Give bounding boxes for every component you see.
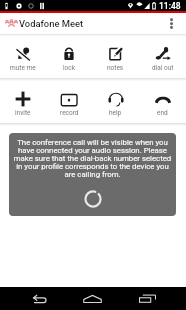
staticText: record	[60, 109, 79, 117]
staticText: invite	[15, 109, 31, 117]
button[interactable]: help	[92, 81, 139, 123]
button[interactable]: More options	[162, 13, 180, 34]
button[interactable]: dial out	[139, 36, 186, 78]
button[interactable]: end	[139, 81, 186, 123]
staticText: dial out	[152, 64, 174, 72]
button[interactable]: lock	[46, 36, 92, 78]
staticText: The conference call will be visible when…	[11, 138, 174, 179]
staticText: lock	[63, 64, 75, 72]
staticText: 11:48	[159, 1, 181, 11]
button[interactable]: Home	[65, 287, 120, 310]
button[interactable]: Recent apps	[120, 287, 175, 310]
staticText: end	[157, 109, 168, 117]
button[interactable]: notes	[92, 36, 139, 78]
button[interactable]: record	[46, 81, 92, 123]
staticText: mute me	[10, 64, 36, 72]
staticText: notes	[107, 64, 124, 72]
staticText: Vodafone Meet	[19, 18, 84, 29]
button[interactable]: invite	[0, 81, 46, 123]
staticText: help	[109, 109, 122, 117]
button[interactable]: Back	[11, 287, 65, 310]
button[interactable]: mute me	[0, 36, 46, 78]
